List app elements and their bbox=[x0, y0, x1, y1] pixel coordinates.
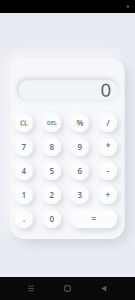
button[interactable]: 7 bbox=[15, 138, 33, 156]
button[interactable]: = bbox=[71, 210, 117, 228]
button[interactable]: 0 bbox=[43, 210, 61, 228]
staticText: / bbox=[106, 118, 109, 128]
staticText: 3 bbox=[77, 190, 82, 200]
staticText: 1 bbox=[21, 190, 26, 200]
staticText: 7 bbox=[21, 142, 26, 152]
button[interactable]: Recent apps bbox=[13, 277, 49, 300]
button[interactable]: 8 bbox=[43, 138, 61, 156]
button[interactable]: * bbox=[99, 138, 117, 156]
staticText: 5 bbox=[49, 166, 54, 176]
staticText: 0 bbox=[100, 77, 111, 102]
staticText: + bbox=[105, 190, 110, 200]
button[interactable]: 2 bbox=[43, 186, 61, 204]
button[interactable]: 6 bbox=[71, 162, 89, 180]
button[interactable]: - bbox=[99, 162, 117, 180]
staticText: CL bbox=[20, 119, 28, 127]
button[interactable]: 9 bbox=[71, 138, 89, 156]
button[interactable]: 1 bbox=[15, 186, 33, 204]
staticText: 6 bbox=[77, 166, 82, 176]
staticText: . bbox=[23, 214, 25, 224]
button[interactable]: DEL bbox=[43, 114, 61, 132]
button[interactable]: Home bbox=[49, 277, 86, 300]
staticText: % bbox=[76, 118, 83, 128]
staticText: - bbox=[106, 166, 109, 176]
staticText: * bbox=[106, 142, 110, 152]
button[interactable]: / bbox=[99, 114, 117, 132]
button[interactable]: 5 bbox=[43, 162, 61, 180]
staticText: 8 bbox=[49, 142, 54, 152]
staticText: = bbox=[91, 214, 96, 224]
staticText: 4 bbox=[21, 166, 26, 176]
button[interactable]: + bbox=[99, 186, 117, 204]
button[interactable]: Back bbox=[86, 277, 122, 300]
button[interactable]: 4 bbox=[15, 162, 33, 180]
button[interactable]: 3 bbox=[71, 186, 89, 204]
staticText: 0 bbox=[49, 214, 54, 224]
staticText: 9 bbox=[77, 142, 82, 152]
staticText: 2 bbox=[49, 190, 54, 200]
staticText: DEL bbox=[47, 119, 57, 127]
button[interactable]: CL bbox=[15, 114, 33, 132]
button[interactable]: . bbox=[15, 210, 33, 228]
button[interactable]: % bbox=[71, 114, 89, 132]
